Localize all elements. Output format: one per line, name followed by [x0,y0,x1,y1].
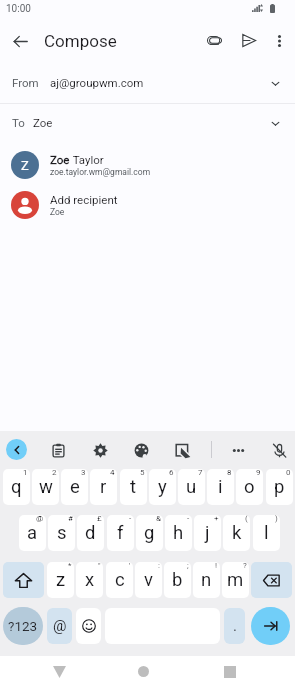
button[interactable]: Clipboard [47,439,69,461]
staticText: s [57,522,67,544]
staticText: 8 [227,469,232,477]
button[interactable]: t [120,469,147,505]
button[interactable]: Z [0,145,295,185]
staticText: t [130,476,137,498]
staticText: u [186,476,197,498]
button[interactable]: More options [267,28,292,53]
button[interactable]: a [19,515,46,551]
button[interactable]: ?123 [3,607,43,645]
button[interactable]: k [223,515,250,551]
staticText: & [156,515,161,523]
button[interactable]: Emoji [76,608,101,644]
staticText: ; [187,562,189,570]
button[interactable]: r [90,469,117,505]
staticText: zoe.taylor.wm@gmail.com [50,167,151,177]
staticText: Add recipient [50,193,118,206]
button[interactable]: m [222,562,249,598]
button[interactable]: q [3,469,30,505]
button[interactable]: n [193,562,220,598]
staticText: . [233,617,237,635]
button[interactable]: Back [46,658,73,685]
staticText: From [12,76,39,89]
button[interactable]: y [149,469,176,505]
button[interactable]: l [253,515,280,551]
staticText: k [232,522,242,544]
button[interactable]: s [48,515,75,551]
button[interactable]: u [178,469,205,505]
staticText: £ [97,515,102,523]
staticText: e [70,476,80,498]
button[interactable]: v [135,562,162,598]
button[interactable]: Shift [3,562,44,598]
staticText: 3 [81,469,86,477]
staticText: r [100,476,107,498]
button[interactable]: b [164,562,191,598]
button[interactable]: Send [236,28,261,53]
staticText: # [68,515,73,523]
button[interactable]: o [236,469,263,505]
staticText: 9 [256,469,261,477]
button[interactable]: w [32,469,59,505]
button[interactable]: i [207,469,234,505]
staticText: Zoe [50,207,65,217]
button[interactable]: Settings [89,439,111,461]
staticText: ' [129,562,131,570]
staticText: 10:00 [6,3,31,15]
button[interactable]: d [77,515,104,551]
button[interactable]: @ [47,608,72,644]
button[interactable]: . [224,608,245,644]
staticText: ( [245,515,248,523]
staticText: l [264,522,269,544]
staticText: j [205,522,210,544]
staticText: ) [275,515,278,523]
staticText: To [12,116,25,129]
button[interactable]: Themes [130,439,152,461]
staticText: : [158,562,160,570]
staticText: m [227,569,244,591]
staticText: ? [243,562,247,570]
button[interactable]: One handed mode [171,439,193,461]
staticText: 7 [198,469,203,477]
button[interactable]: Next [251,607,290,645]
button[interactable]: More [227,439,249,461]
staticText: a [27,522,38,544]
button[interactable]: From [0,58,295,103]
button[interactable]: p [266,469,293,505]
button[interactable]: g [136,515,163,551]
button[interactable]: x [76,562,103,598]
staticText: b [172,569,183,591]
staticText: 0 [286,469,291,477]
staticText: @ [53,617,67,635]
staticText: - [187,515,190,523]
staticText: n [201,569,212,591]
button[interactable]: Attach file [202,28,227,53]
staticText: - [129,515,132,523]
staticText: aj@groupwm.com [50,76,144,89]
button[interactable]: Recents [216,658,243,685]
button[interactable]: z [47,562,74,598]
button[interactable]: Home [130,658,157,685]
button[interactable]: j [194,515,221,551]
button[interactable]: h [165,515,192,551]
staticText: + [214,515,219,523]
staticText: c [115,569,125,591]
button[interactable]: To [0,104,295,145]
button[interactable]: f [107,515,134,551]
staticText: w [39,476,53,498]
staticText: 2 [52,469,57,477]
staticText: p [274,476,285,498]
staticText: z [56,569,66,591]
staticText: Zoe [33,116,53,129]
button[interactable]: Back [6,439,27,460]
staticText: Zoe [50,153,70,166]
button[interactable]: Voice input off [268,439,290,461]
staticText: y [158,476,167,498]
button[interactable]: Add recipient [0,185,295,225]
button[interactable]: e [61,469,88,505]
staticText: o [244,476,255,498]
button[interactable]: Back [8,29,32,53]
button[interactable]: c [106,562,133,598]
button[interactable]: Backspace [251,562,292,598]
staticText: @ [36,515,44,523]
